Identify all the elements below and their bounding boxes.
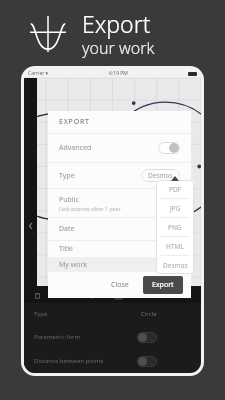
button[interactable]: HTML <box>156 237 194 255</box>
button[interactable]: Grid <box>113 290 123 300</box>
staticText: 6:19 PM <box>49 70 188 77</box>
staticText: Public <box>59 195 79 205</box>
staticText: Link expires after 1 year <box>59 205 121 212</box>
button[interactable]: Type <box>48 163 191 188</box>
button[interactable]: Date <box>48 218 191 240</box>
button[interactable]: Move <box>86 290 96 300</box>
button[interactable]: Parametric form <box>24 325 201 349</box>
staticText: My work <box>59 260 88 270</box>
staticText: Circle <box>141 310 157 318</box>
button[interactable]: PNG <box>156 218 194 236</box>
button[interactable]: Advanced <box>48 134 191 162</box>
button[interactable]: Collapse panel <box>24 218 37 234</box>
button[interactable]: Desmos <box>156 256 194 274</box>
button[interactable]: My work <box>48 257 191 272</box>
staticText: your work <box>82 37 155 59</box>
button[interactable]: Export <box>143 276 183 294</box>
staticText: Title <box>59 244 73 254</box>
staticText: EXPORT <box>59 117 90 127</box>
staticText: Advanced <box>59 143 92 153</box>
button[interactable]: Visibility <box>59 290 69 300</box>
staticText: Desmos <box>163 261 188 270</box>
button[interactable]: Close <box>103 277 137 293</box>
button[interactable]: JPG <box>156 199 194 217</box>
button[interactable]: Delete <box>32 290 42 300</box>
button[interactable]: PDF <box>156 180 194 198</box>
button[interactable]: Distance between points <box>24 349 201 373</box>
staticText: Export <box>152 280 174 290</box>
staticText: Carrier ▾ <box>28 70 49 77</box>
staticText: Parametric form <box>34 333 81 341</box>
staticText: JPG <box>170 204 181 213</box>
button[interactable]: Type <box>24 303 201 325</box>
staticText: Distance between points <box>34 357 104 365</box>
staticText: PDF <box>169 185 182 194</box>
staticText: Type <box>34 310 48 318</box>
staticText: PNG <box>168 223 182 232</box>
staticText: Type <box>59 171 75 181</box>
staticText: Close <box>111 280 129 290</box>
staticText: HTML <box>166 242 184 251</box>
staticText: Export <box>82 8 151 39</box>
staticText: Date <box>59 224 75 234</box>
button[interactable]: Public <box>48 189 191 217</box>
staticText: Desmos <box>148 171 173 180</box>
